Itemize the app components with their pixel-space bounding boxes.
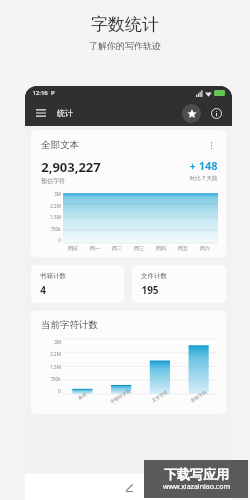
- staticText: 当前字符计数: [41, 319, 98, 331]
- staticText: 全部文本: [41, 139, 79, 151]
- staticText: 文件计数: [141, 272, 167, 280]
- button[interactable]: Menu: [33, 105, 49, 121]
- staticText: 周二: [112, 245, 122, 251]
- button[interactable]: Favorite: [182, 104, 201, 123]
- staticText: 周六: [200, 245, 210, 251]
- staticText: 3M: [54, 191, 61, 197]
- staticText: 0: [58, 237, 61, 243]
- staticText: 3M: [54, 339, 61, 345]
- staticText: 1.5M: [50, 364, 61, 370]
- staticText: 周日: [68, 245, 78, 251]
- staticText: 周四: [156, 245, 166, 251]
- button[interactable]: 全部文本: [31, 130, 226, 257]
- staticText: 书籍计数: [40, 272, 66, 280]
- button[interactable]: 当前字符计数: [31, 311, 226, 414]
- staticText: 0: [58, 388, 61, 394]
- staticText: 了解你的写作轨迹: [89, 40, 161, 51]
- button[interactable]: 书籍计数: [31, 265, 124, 303]
- staticText: www.xiazainiao.com: [163, 482, 230, 492]
- staticText: 1.5M: [50, 214, 61, 220]
- staticText: 750k: [50, 376, 61, 382]
- staticText: 所有字符: [190, 390, 208, 404]
- staticText: + 148: [189, 158, 218, 173]
- staticText: 文字字符: [151, 390, 169, 404]
- button[interactable]: Info: [208, 105, 224, 121]
- staticText: 周一: [90, 245, 100, 251]
- button[interactable]: Compose: [119, 477, 139, 497]
- staticText: 下载写应用: [164, 466, 229, 482]
- button[interactable]: More options: [204, 138, 218, 152]
- staticText: 预估字符: [41, 177, 65, 185]
- staticText: 周五: [178, 245, 188, 251]
- button[interactable]: 文件计数: [132, 265, 226, 303]
- staticText: 单词: [77, 392, 88, 402]
- staticText: 2.2M: [50, 203, 61, 209]
- staticText: 统计: [57, 108, 73, 118]
- staticText: 2.2M: [50, 351, 61, 357]
- staticText: 字母转字符: [109, 388, 132, 406]
- staticText: 周三: [134, 245, 144, 251]
- staticText: 4: [40, 283, 46, 297]
- staticText: 对比 7 天前: [189, 174, 218, 182]
- staticText: 2,903,227: [41, 158, 101, 176]
- staticText: 12:16 P: [32, 89, 55, 97]
- staticText: 195: [141, 283, 159, 297]
- staticText: 750k: [50, 226, 61, 232]
- staticText: 字数统计: [91, 14, 159, 35]
